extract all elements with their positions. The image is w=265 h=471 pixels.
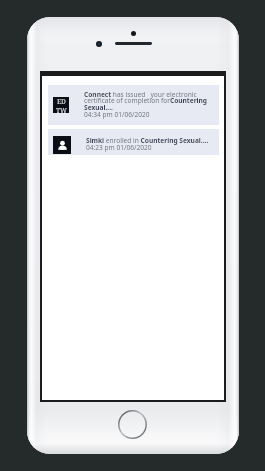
staticText: Simki enrolled in Countering Sexual.... [86, 136, 209, 145]
staticText: Connect has issued your electronic certi… [84, 90, 215, 112]
staticText: ED [57, 97, 66, 106]
staticText: 04:23 pm 01/06/2020 [86, 143, 152, 152]
button[interactable]: Simki enrolled in Countering Sexual.... [48, 129, 219, 155]
staticText: 04:34 pm 01/06/2020 [84, 110, 150, 119]
staticText: TW [56, 106, 67, 113]
button[interactable]: ED [48, 85, 219, 125]
